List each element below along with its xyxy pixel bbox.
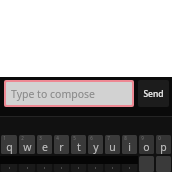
staticText: 1 [3,135,6,141]
staticText: o [143,140,150,154]
staticText: w [23,140,32,154]
staticText: r [59,140,64,154]
button[interactable] [88,156,103,172]
button[interactable] [71,156,86,172]
button[interactable] [37,156,52,172]
button[interactable]: 6 [88,135,103,154]
staticText: i [128,140,131,154]
staticText: Send [143,88,164,100]
button[interactable]: 8 [122,135,137,154]
staticText: Type to compose [11,87,95,101]
staticText: 0 [158,135,161,141]
button[interactable]: 4 [54,135,69,154]
button[interactable]: 5 [71,135,86,154]
staticText: q [6,140,13,154]
staticText: 6 [90,135,93,141]
staticText: p [160,140,167,154]
button[interactable] [105,156,120,172]
staticText: e [42,140,48,154]
button[interactable] [19,156,35,172]
staticText: 4 [56,135,59,141]
button[interactable] [122,156,137,172]
button[interactable]: Send [138,80,169,107]
staticText: t [77,140,81,154]
staticText: y [93,140,99,154]
button[interactable] [1,156,17,172]
button[interactable]: 1 [1,135,17,154]
button[interactable] [54,156,69,172]
button[interactable]: Type to compose [4,80,134,107]
button[interactable]: 7 [105,135,120,154]
staticText: 8 [124,135,127,141]
button[interactable]: 3 [37,135,52,154]
staticText: 5 [73,135,76,141]
staticText: u [109,140,116,154]
staticText: 2 [21,135,24,141]
button[interactable]: 0 [156,135,171,154]
staticText: 9 [141,135,144,141]
staticText: 3 [39,135,42,141]
button[interactable]: 9 [139,135,154,154]
button[interactable]: 2 [19,135,35,154]
staticText: 7 [107,135,110,141]
